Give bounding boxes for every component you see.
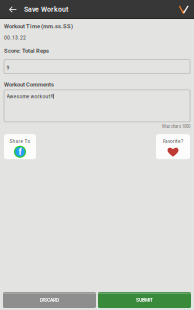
staticText: Share To xyxy=(9,138,30,144)
staticText: SUBMIT xyxy=(136,297,153,303)
staticText: Workout Time (mm.ss.SS) xyxy=(4,23,73,30)
staticText: DISCARD xyxy=(40,297,59,303)
staticText: f xyxy=(18,147,21,157)
staticText: Favorite? xyxy=(163,138,183,144)
staticText: Save Workout xyxy=(24,5,68,13)
button[interactable]: SUBMIT xyxy=(98,292,191,308)
button[interactable]: Share To xyxy=(4,134,36,159)
staticText: Score: Total Reps xyxy=(4,47,49,54)
button[interactable]: DISCARD xyxy=(3,292,96,308)
staticText: Awesome workout!! xyxy=(6,93,52,100)
staticText: Workout Comments xyxy=(4,81,54,88)
button[interactable]: Favorite? xyxy=(156,134,190,159)
staticText: 00.13.22 xyxy=(4,34,26,41)
button[interactable]: Back xyxy=(0,0,24,19)
staticText: 9 xyxy=(6,64,9,71)
staticText: Max chars 1000 xyxy=(162,123,190,129)
